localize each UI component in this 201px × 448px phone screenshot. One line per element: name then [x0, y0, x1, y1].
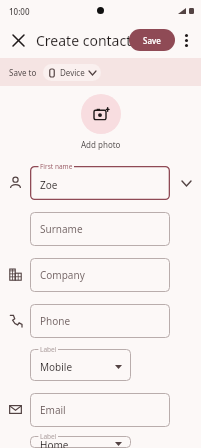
staticText: Mobile	[40, 360, 73, 374]
staticText: Create contact	[36, 31, 132, 50]
staticText: Company	[40, 268, 85, 282]
staticText: Email	[40, 403, 66, 417]
button[interactable]: Company	[30, 258, 170, 292]
button[interactable]: Label	[30, 436, 131, 448]
staticText: First name	[40, 162, 73, 171]
button[interactable]: Close	[6, 28, 30, 52]
button[interactable]: Save	[129, 29, 175, 51]
staticText: Save to	[9, 67, 37, 78]
staticText: Label	[40, 432, 57, 441]
staticText: Save	[143, 35, 161, 46]
staticText: Zoe	[40, 178, 58, 192]
staticText: 10:00	[9, 6, 30, 17]
button[interactable]: First name	[30, 166, 170, 200]
button[interactable]: Phone	[30, 304, 170, 338]
button[interactable]: Email	[30, 393, 170, 427]
staticText: Phone	[40, 314, 71, 328]
staticText: Add photo	[81, 139, 121, 150]
button[interactable]: Surname	[30, 212, 170, 246]
staticText: Surname	[40, 222, 83, 236]
button[interactable]: More options	[175, 29, 197, 51]
button[interactable]: Label	[30, 349, 131, 381]
staticText: Label	[40, 345, 57, 354]
staticText: Device	[60, 67, 85, 78]
button[interactable]: Device	[43, 64, 101, 81]
staticText: Home	[40, 438, 69, 448]
button[interactable]: Add photo	[0, 94, 201, 150]
button[interactable]: Expand name fields	[177, 174, 195, 192]
